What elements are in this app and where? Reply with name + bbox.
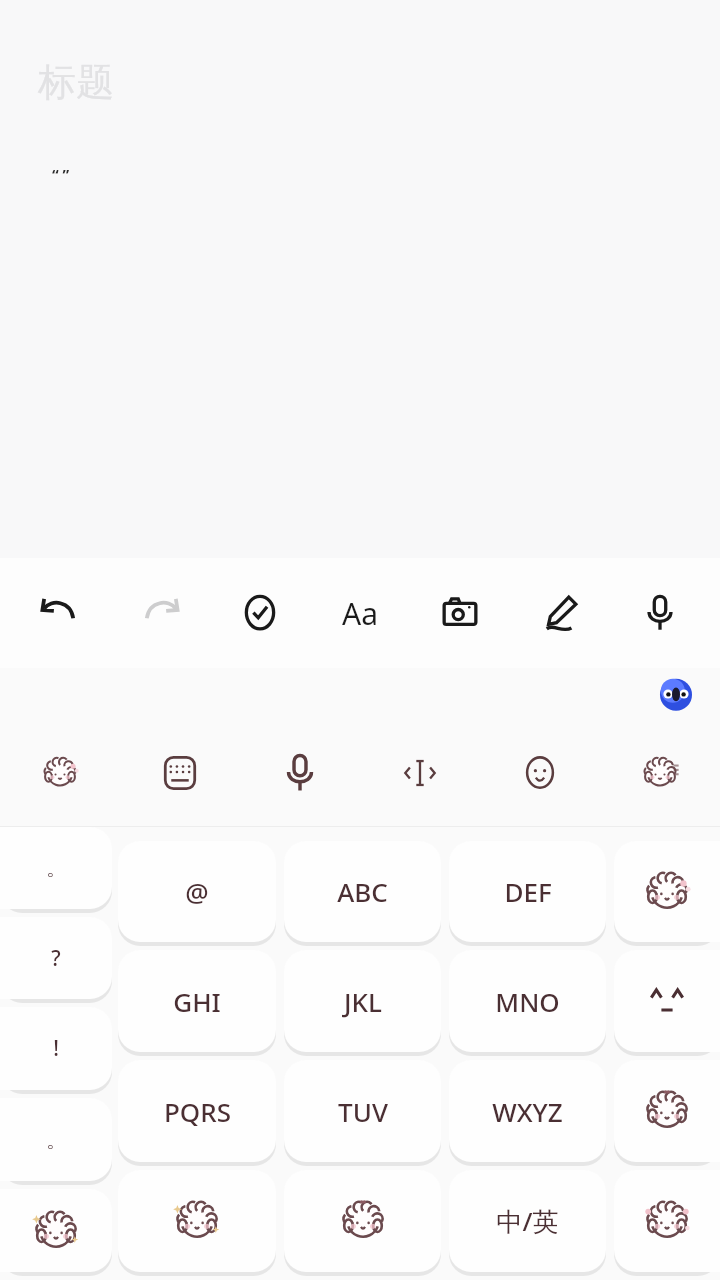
button[interactable]: MNO [449, 950, 606, 1052]
staticText: 标题 [38, 58, 114, 106]
button[interactable]: 。 [0, 827, 112, 909]
button[interactable]: Draw [510, 558, 610, 668]
staticText: MNO [495, 984, 560, 1019]
staticText: ABC [337, 874, 388, 909]
button[interactable]: 中/英 [449, 1170, 606, 1272]
button[interactable]: ! [0, 1007, 112, 1090]
staticText: GHI [173, 984, 221, 1019]
button[interactable]: 。 [0, 1098, 112, 1181]
button[interactable]: Redo [110, 558, 210, 668]
staticText: ! [53, 1034, 59, 1063]
button[interactable]: Camera [410, 558, 510, 668]
button[interactable]: Sticker [0, 720, 120, 826]
button[interactable]: Keyboard layout [120, 720, 240, 826]
button[interactable]: Undo [10, 558, 110, 668]
button[interactable]: DEF [449, 841, 606, 942]
button[interactable]: Checklist [210, 558, 310, 668]
staticText: 。 [46, 855, 67, 881]
staticText: ? [51, 944, 61, 973]
button[interactable]: Kaomoji [614, 950, 720, 1052]
staticText: DEF [504, 874, 552, 909]
button[interactable]: Text format [310, 558, 410, 668]
staticText: @ [185, 874, 209, 909]
staticText: TUV [338, 1094, 388, 1129]
staticText: JKL [344, 984, 382, 1019]
button[interactable]: Emoji [480, 720, 600, 826]
button[interactable]: TUV [284, 1060, 441, 1162]
staticText: PQRS [164, 1094, 231, 1129]
button[interactable]: Voice input [240, 720, 360, 826]
button[interactable]: Enter [614, 1060, 720, 1162]
button[interactable]: Symbols [118, 1170, 276, 1272]
button[interactable]: Theme [600, 720, 720, 826]
staticText: 。 [46, 1127, 67, 1153]
button[interactable]: ABC [284, 841, 441, 942]
button[interactable]: Move cursor [360, 720, 480, 826]
button[interactable]: AI assistant [656, 674, 696, 714]
staticText: “ ” [52, 164, 70, 184]
button[interactable]: @ [118, 841, 276, 942]
button[interactable]: PQRS [118, 1060, 276, 1162]
staticText: Aa [342, 593, 378, 634]
button[interactable]: Send [614, 1170, 720, 1272]
staticText: WXYZ [492, 1094, 563, 1129]
button[interactable]: JKL [284, 950, 441, 1052]
button[interactable]: Backspace [614, 841, 720, 942]
button[interactable]: Emoji [284, 1170, 441, 1272]
button[interactable]: ? [0, 917, 112, 999]
button[interactable]: GHI [118, 950, 276, 1052]
button[interactable]: WXYZ [449, 1060, 606, 1162]
button[interactable]: Sticker [0, 1189, 112, 1272]
staticText: 中/英 [496, 1203, 559, 1239]
button[interactable]: Voice [610, 558, 710, 668]
